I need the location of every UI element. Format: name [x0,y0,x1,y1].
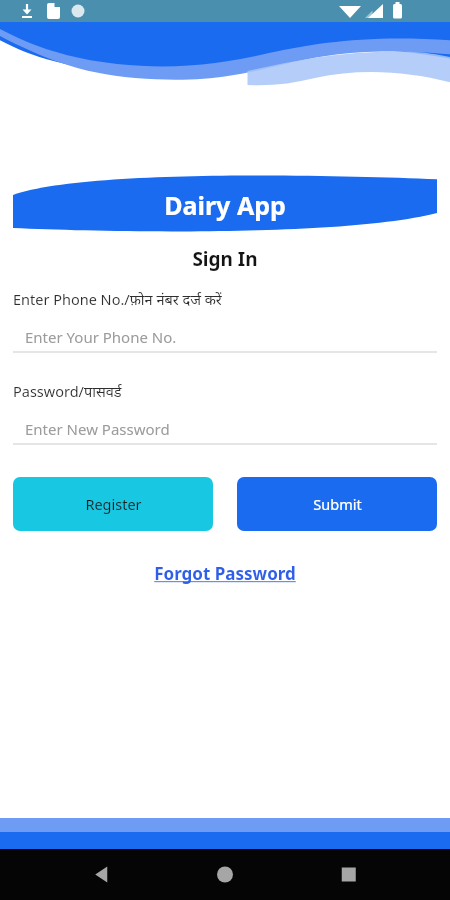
button[interactable]: Enter Your Phone No. [13,322,437,352]
button[interactable]: Submit [237,477,437,531]
button[interactable]: Register [13,477,213,531]
button[interactable]: Enter New Password [13,414,437,444]
staticText: Sign In [0,246,450,272]
staticText: Register [85,494,142,514]
staticText: Enter Your Phone No. [25,327,177,347]
staticText: Password/पासवर्ड [13,381,122,401]
staticText: Enter Phone No./फ़ोन नंबर दर्ज करें [13,289,222,309]
staticText: Enter New Password [25,419,170,439]
staticText: Submit [313,494,362,514]
staticText: Dairy App [164,188,286,222]
button[interactable]: Forgot Password [150,558,300,589]
